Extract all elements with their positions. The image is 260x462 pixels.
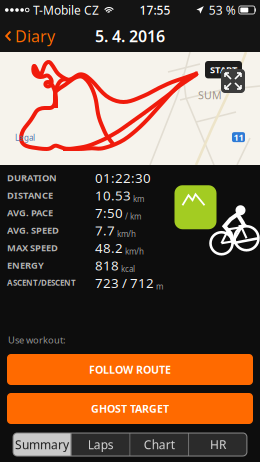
staticText: 11 (233, 131, 243, 143)
staticText: kcal (121, 263, 135, 274)
staticText: Use workout: (8, 334, 66, 346)
staticText: SUM (198, 88, 222, 102)
staticText: 5. 4. 2016 (95, 25, 165, 47)
staticText: GHOST TARGET (91, 401, 169, 416)
staticText: 10.53 (95, 186, 131, 204)
staticText: 723 / 712 (95, 274, 154, 292)
staticText: 818 (95, 256, 119, 274)
staticText: km/h (117, 228, 136, 239)
staticText: AVG. SPEED (7, 224, 59, 236)
staticText: ENERGY (7, 259, 44, 271)
button[interactable]: Summary (13, 433, 71, 456)
button[interactable]: GHOST TARGET (7, 393, 253, 424)
button[interactable]: Diary (0, 20, 61, 52)
staticText: DURATION (7, 172, 57, 184)
button[interactable]: Laps (72, 433, 129, 456)
staticText: START (210, 63, 237, 76)
staticText: 7:50 (95, 204, 123, 222)
staticText: HR (210, 436, 226, 452)
button[interactable]: HR (189, 433, 247, 456)
staticText: 7.7 (95, 221, 115, 239)
staticText: km (133, 193, 144, 204)
button[interactable]: Expand map (221, 69, 245, 93)
staticText: 53 % (209, 2, 236, 18)
staticText: FOLLOW ROUTE (89, 362, 171, 377)
staticText: km/h (125, 246, 144, 257)
staticText: AVG. PACE (7, 207, 53, 219)
button[interactable]: Legal (15, 132, 35, 143)
staticText: m (156, 281, 163, 292)
button[interactable]: Chart (130, 433, 188, 456)
staticText: / km (125, 211, 141, 222)
staticText: DISTANCE (7, 189, 53, 201)
staticText: 01:22:30 (95, 169, 151, 187)
staticText: T-Mobile CZ (33, 2, 99, 18)
staticText: Laps (88, 436, 114, 452)
staticText: ASCENT/DESCENT (7, 277, 76, 288)
staticText: 17:55 (139, 2, 170, 18)
button[interactable]: FOLLOW ROUTE (7, 354, 253, 385)
staticText: 48.2 (95, 239, 123, 257)
staticText: Chart (144, 436, 175, 452)
staticText: MAX SPEED (7, 242, 58, 254)
staticText: Diary (15, 25, 55, 47)
staticText: Summary (15, 436, 69, 452)
staticText: Legal (15, 132, 35, 143)
